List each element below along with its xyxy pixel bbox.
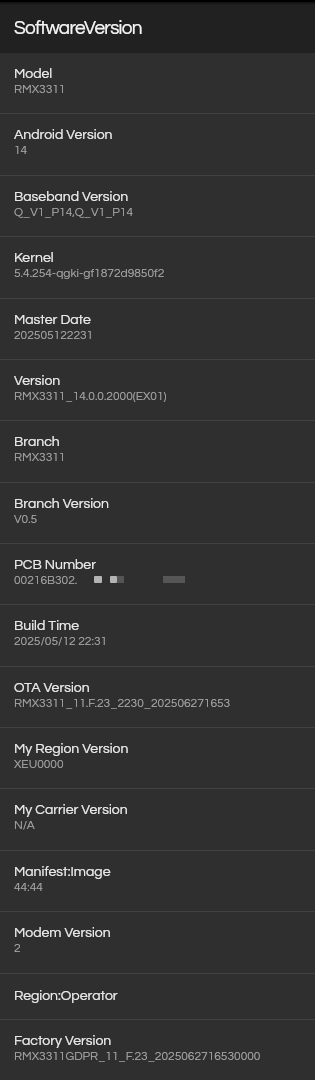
- button[interactable]: My Carrier Version: [0, 789, 315, 850]
- staticText: RMX3311_14.0.0.2000(EX01): [14, 390, 167, 402]
- staticText: 00216B302.: [14, 574, 78, 586]
- staticText: Version: [14, 374, 61, 388]
- staticText: PCB Number: [14, 558, 96, 572]
- staticText: SoftwareVersion: [14, 18, 142, 38]
- staticText: Android Version: [14, 128, 113, 142]
- staticText: 2: [14, 942, 21, 954]
- button[interactable]: My Region Version: [0, 728, 315, 788]
- staticText: N/A: [14, 819, 35, 831]
- staticText: Region:Operator: [14, 989, 118, 1003]
- staticText: RMX3311_11.F.23_2230_202506271653: [14, 697, 231, 709]
- staticText: 202505122231: [14, 329, 94, 341]
- staticText: Build Time: [14, 619, 79, 633]
- staticText: Model: [14, 67, 53, 81]
- button[interactable]: Master Date: [0, 299, 315, 359]
- staticText: RMX3311: [14, 451, 66, 463]
- staticText: Q_V1_P14,Q_V1_P14: [14, 206, 134, 218]
- staticText: RMX3311: [14, 83, 66, 95]
- button[interactable]: OTA Version: [0, 667, 315, 727]
- staticText: RMX3311GDPR_11_F.23_2025062716530000: [14, 1050, 261, 1062]
- staticText: Branch: [14, 435, 60, 449]
- button[interactable]: Region:Operator: [0, 974, 315, 1019]
- button[interactable]: Model: [0, 53, 315, 113]
- button[interactable]: PCB Number: [0, 544, 315, 604]
- button[interactable]: Branch: [0, 421, 315, 482]
- staticText: 2025/05/12 22:31: [14, 635, 108, 647]
- staticText: XEU0000: [14, 758, 64, 770]
- button[interactable]: Baseband Version: [0, 176, 315, 236]
- staticText: My Region Version: [14, 742, 129, 756]
- staticText: Manifest:Image: [14, 865, 111, 879]
- staticText: 5.4.254-qgki-gf1872d9850f2: [14, 267, 165, 279]
- button[interactable]: Android Version: [0, 114, 315, 175]
- button[interactable]: Modem Version: [0, 912, 315, 973]
- staticText: 44:44: [14, 881, 43, 893]
- button[interactable]: Build Time: [0, 605, 315, 666]
- staticText: OTA Version: [14, 681, 90, 695]
- button[interactable]: Manifest:Image: [0, 851, 315, 911]
- button[interactable]: Branch Version: [0, 483, 315, 543]
- staticText: My Carrier Version: [14, 803, 128, 817]
- staticText: Master Date: [14, 313, 91, 327]
- staticText: 14: [14, 144, 28, 156]
- staticText: Factory Version: [14, 1034, 112, 1048]
- button[interactable]: Version: [0, 360, 315, 420]
- staticText: V0.5: [14, 513, 38, 525]
- staticText: Baseband Version: [14, 190, 129, 204]
- staticText: Kernel: [14, 251, 54, 265]
- staticText: Modem Version: [14, 926, 111, 940]
- button[interactable]: Kernel: [0, 237, 315, 298]
- button[interactable]: Factory Version: [0, 1020, 315, 1080]
- staticText: Branch Version: [14, 497, 109, 511]
